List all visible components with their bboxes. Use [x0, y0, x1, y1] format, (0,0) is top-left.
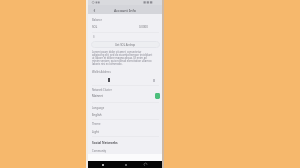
staticText: English	[92, 113, 102, 117]
staticText: Theme	[92, 122, 101, 126]
button[interactable]: Recents	[94, 161, 112, 168]
button[interactable]: Back	[136, 161, 154, 168]
staticText: SOL	[92, 25, 98, 29]
button[interactable]: Home	[117, 161, 135, 168]
staticText: Light	[92, 130, 99, 134]
staticText: Balance	[92, 18, 102, 22]
staticText: Get SOL Airdrop	[115, 43, 136, 47]
staticText: $	[93, 35, 95, 39]
button[interactable]: Network toggle	[155, 93, 160, 99]
button[interactable]: Get SOL Airdrop	[91, 41, 160, 48]
button[interactable]: Back	[90, 6, 98, 14]
staticText: Lorem ipsum dolor sit amet, consectetur …	[92, 50, 153, 65]
staticText: Account Info	[114, 8, 136, 13]
button[interactable]: Wallet address	[92, 76, 118, 84]
staticText: Mainnet	[92, 94, 103, 98]
button[interactable]: Copy address	[150, 76, 158, 84]
staticText: 0.0000	[139, 25, 148, 29]
staticText: Community	[92, 149, 107, 153]
staticText: Social Networks	[92, 141, 118, 145]
staticText: Network Cluster	[92, 88, 112, 92]
staticText: Wallet Address	[92, 70, 111, 74]
staticText: Language	[92, 106, 105, 110]
